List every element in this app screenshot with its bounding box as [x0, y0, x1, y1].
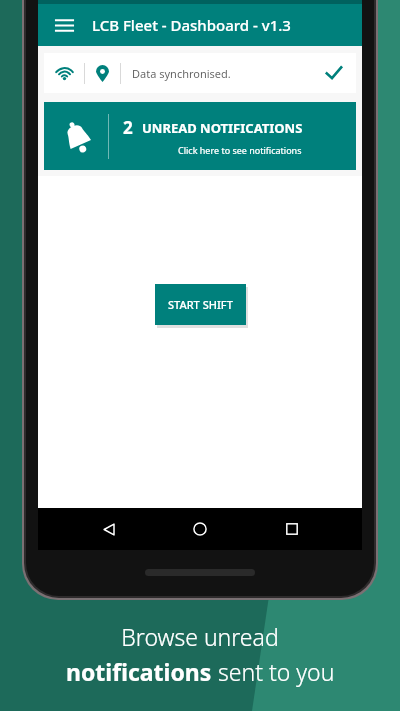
button[interactable]: Open navigation menu	[47, 8, 81, 42]
staticText: UNREAD NOTIFICATIONS	[142, 119, 303, 137]
staticText: Click here to see notifications	[178, 144, 302, 156]
button[interactable]: Recent apps	[271, 508, 313, 550]
staticText: sent to you	[212, 656, 335, 687]
staticText: 2	[123, 116, 133, 139]
staticText: LCB Fleet - Dashboard - v1.3	[92, 15, 291, 35]
button[interactable]: START SHIFT	[155, 284, 246, 325]
button[interactable]: 2	[44, 102, 356, 170]
staticText: Browse unread	[121, 621, 279, 652]
button[interactable]: Data synchronised.	[44, 53, 356, 93]
staticText: START SHIFT	[168, 297, 233, 312]
staticText: notifications	[66, 656, 212, 687]
button[interactable]: Back	[88, 508, 130, 550]
staticText: Data synchronised.	[132, 66, 231, 81]
button[interactable]: Home	[179, 508, 221, 550]
